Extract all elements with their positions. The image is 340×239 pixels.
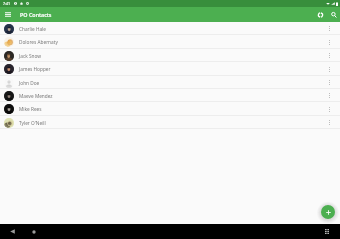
staticText: Maeve Mendez (19, 93, 53, 99)
staticText: Dolores Abernaty (19, 39, 58, 45)
button[interactable]: Back (7, 226, 18, 237)
staticText: PO Contacts (20, 11, 52, 18)
button[interactable]: More options (324, 35, 335, 49)
button[interactable]: Maeve Mendez (0, 89, 340, 102)
staticText: 7:41 (3, 1, 11, 6)
button[interactable]: Jack Snow (0, 49, 340, 62)
button[interactable]: More options (324, 49, 335, 62)
button[interactable]: Recent apps (321, 226, 332, 237)
staticText: Jack Snow (19, 53, 42, 59)
button[interactable]: Sync (314, 7, 327, 22)
button[interactable]: Navigation menu (0, 7, 16, 22)
button[interactable]: Mike Rees (0, 102, 340, 116)
button[interactable]: Tyler O'Neill (0, 116, 340, 129)
button[interactable]: Home (28, 226, 39, 237)
button[interactable]: More options (324, 76, 335, 89)
button[interactable]: More options (324, 22, 335, 35)
button[interactable]: Search (327, 7, 340, 22)
staticText: Charlie Hale (19, 26, 47, 32)
button[interactable]: Dolores Abernaty (0, 35, 340, 49)
button[interactable]: James Hopper (0, 62, 340, 76)
button[interactable]: Add contact (321, 205, 335, 219)
button[interactable]: More options (324, 116, 335, 129)
button[interactable]: John Doe (0, 76, 340, 89)
staticText: Tyler O'Neill (19, 120, 46, 126)
button[interactable]: More options (324, 62, 335, 76)
staticText: John Doe (19, 80, 40, 86)
button[interactable]: Charlie Hale (0, 22, 340, 35)
button[interactable]: More options (324, 102, 335, 116)
staticText: James Hopper (19, 66, 51, 72)
staticText: Mike Rees (19, 106, 42, 112)
button[interactable]: More options (324, 89, 335, 102)
